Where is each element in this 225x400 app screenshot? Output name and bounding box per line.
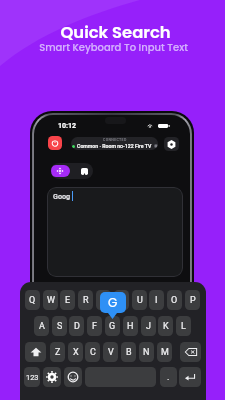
staticText: A: [39, 321, 45, 332]
button[interactable]: T: [96, 290, 111, 310]
button[interactable]: U: [132, 290, 147, 310]
button[interactable]: F: [87, 316, 102, 336]
button[interactable]: K: [158, 316, 173, 336]
button[interactable]: J: [141, 316, 156, 336]
staticText: D: [74, 321, 80, 332]
button[interactable]: A: [34, 316, 49, 336]
staticText: N: [143, 347, 150, 358]
button[interactable]: Backspace: [180, 342, 201, 362]
button[interactable]: B: [121, 342, 136, 362]
button[interactable]: Z: [50, 342, 65, 362]
button[interactable]: Directional pad: [51, 165, 70, 177]
staticText: 123: [26, 373, 39, 382]
staticText: Goog: [53, 192, 71, 200]
button[interactable]: P: [185, 290, 200, 310]
button[interactable]: Q: [25, 290, 40, 310]
button[interactable]: H: [123, 316, 138, 336]
button[interactable]: Goog: [47, 187, 183, 277]
button[interactable]: X: [68, 342, 83, 362]
staticText: X: [73, 347, 79, 358]
button[interactable]: Power: [48, 136, 62, 150]
button[interactable]: I: [149, 290, 164, 310]
button[interactable]: D: [69, 316, 84, 336]
button[interactable]: W: [43, 290, 58, 310]
staticText: L: [181, 321, 186, 332]
staticText: R: [83, 295, 89, 306]
staticText: E: [65, 295, 71, 306]
staticText: J: [146, 321, 151, 332]
staticText: CONNECTED: [103, 138, 127, 142]
button[interactable]: R: [78, 290, 93, 310]
staticText: P: [190, 295, 196, 306]
staticText: B: [126, 347, 132, 358]
staticText: K: [163, 321, 169, 332]
staticText: C: [90, 347, 96, 358]
button[interactable]: M: [157, 342, 172, 362]
staticText: Common · Room no-122 Fire TV: [77, 143, 152, 149]
staticText: M: [161, 347, 169, 358]
staticText: H: [127, 321, 134, 332]
staticText: Smart Keyboard To Input Text: [39, 40, 188, 54]
staticText: F: [92, 321, 97, 332]
button[interactable]: V: [103, 342, 118, 362]
button[interactable]: 123: [24, 367, 40, 387]
button[interactable]: G: [105, 316, 120, 336]
staticText: .: [167, 372, 170, 383]
staticText: Z: [55, 347, 61, 358]
button[interactable]: Emoji: [64, 367, 82, 387]
button[interactable]: Touchpad: [74, 165, 93, 177]
button[interactable]: Y: [114, 290, 129, 310]
staticText: W: [47, 295, 55, 306]
button[interactable]: O: [167, 290, 182, 310]
button[interactable]: CONNECTED: [71, 137, 158, 150]
button[interactable]: C: [85, 342, 100, 362]
staticText: G: [109, 321, 116, 332]
button[interactable]: Keyboard settings: [43, 367, 61, 387]
staticText: S: [57, 321, 63, 332]
staticText: O: [171, 295, 178, 306]
staticText: 10:12: [58, 122, 77, 130]
button[interactable]: E: [60, 290, 75, 310]
staticText: Quick Search: [60, 21, 171, 44]
staticText: G: [108, 294, 118, 311]
button[interactable]: S: [52, 316, 67, 336]
staticText: I: [155, 295, 158, 306]
button[interactable]: Enter: [179, 367, 201, 387]
button[interactable]: N: [139, 342, 154, 362]
button[interactable]: Settings: [164, 137, 179, 151]
button[interactable]: .: [160, 367, 177, 387]
button[interactable]: Shift: [25, 342, 46, 362]
staticText: V: [108, 347, 114, 358]
staticText: Q: [29, 295, 36, 306]
staticText: U: [137, 295, 143, 306]
button[interactable]: L: [176, 316, 191, 336]
